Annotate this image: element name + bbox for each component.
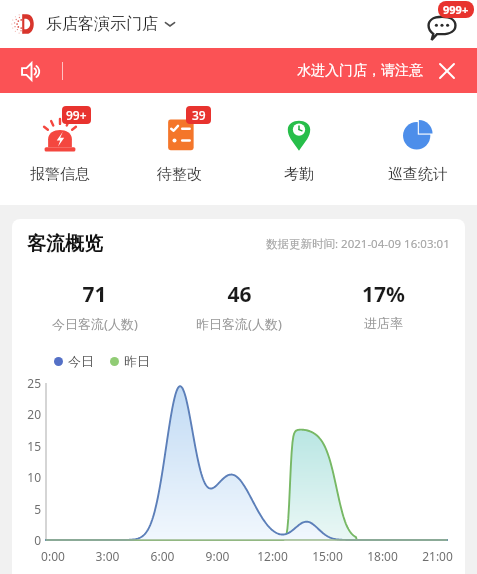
button[interactable]: 71 xyxy=(22,280,167,333)
button[interactable]: 99+ xyxy=(0,93,120,205)
staticText: 25 xyxy=(12,375,41,391)
staticText: 999+ xyxy=(443,2,469,17)
staticText: 0:00 xyxy=(26,548,80,564)
staticText: 6:00 xyxy=(135,548,190,564)
staticText: 15 xyxy=(12,438,41,454)
staticText: 客流概览 xyxy=(27,232,103,256)
staticText: 考勤 xyxy=(284,165,314,184)
button[interactable]: 关闭 xyxy=(431,55,463,87)
staticText: 昨日 xyxy=(124,353,150,369)
staticText: 99+ xyxy=(66,107,87,123)
staticText: 20 xyxy=(12,406,41,422)
staticText: 39 xyxy=(192,107,206,123)
staticText: 9:00 xyxy=(190,548,245,564)
staticText: 巡查统计 xyxy=(388,165,448,184)
button[interactable]: 巡查统计 xyxy=(358,93,477,205)
button[interactable]: 消息 xyxy=(420,6,464,50)
staticText: 报警信息 xyxy=(30,165,90,184)
staticText: 水进入门店，请注意 xyxy=(297,62,425,80)
staticText: 71 xyxy=(82,280,107,309)
button[interactable]: 46 xyxy=(167,280,311,333)
staticText: 18:00 xyxy=(355,548,410,564)
staticText: 3:00 xyxy=(80,548,135,564)
staticText: 5 xyxy=(12,501,41,517)
staticText: 10 xyxy=(12,469,41,485)
staticText: 0 xyxy=(12,532,41,548)
button[interactable]: 17% xyxy=(311,280,455,331)
staticText: 12:00 xyxy=(245,548,300,564)
button[interactable]: 考勤 xyxy=(239,93,358,205)
staticText: 46 xyxy=(227,280,252,309)
staticText: 今日客流(人数) xyxy=(52,315,138,333)
button[interactable]: 乐店客演示门店 xyxy=(14,12,176,36)
staticText: 数据更新时间: 2021-04-09 16:03:01 xyxy=(266,236,450,252)
staticText: 今日 xyxy=(68,353,94,369)
button[interactable]: 39 xyxy=(120,93,239,205)
staticText: 乐店客演示门店 xyxy=(46,14,158,34)
staticText: 17% xyxy=(362,280,405,309)
staticText: 15:00 xyxy=(300,548,355,564)
staticText: 待整改 xyxy=(157,165,202,184)
staticText: 昨日客流(人数) xyxy=(196,315,282,333)
staticText: 进店率 xyxy=(364,315,403,331)
button[interactable]: 语音播报 xyxy=(15,55,47,87)
staticText: 21:00 xyxy=(410,548,465,564)
